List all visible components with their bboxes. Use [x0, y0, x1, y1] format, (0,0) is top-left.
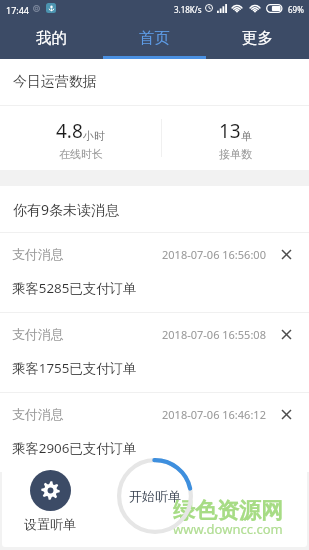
staticText: 2018-07-06 16:46:12 [162, 407, 266, 422]
staticText: 接单数 [219, 147, 252, 161]
staticText: 设置听单 [24, 516, 76, 532]
staticText: 4.8 [56, 118, 83, 144]
staticText: 更多 [242, 28, 273, 48]
staticText: 首页 [139, 28, 170, 48]
staticText: 17:44 [6, 4, 30, 16]
button[interactable]: 设置听单 [24, 470, 76, 532]
staticText: 小时 [83, 129, 105, 143]
staticText: 乘客1755已支付订单 [12, 359, 137, 377]
button[interactable]: 开始听单 [117, 458, 193, 534]
button[interactable]: 首页 [103, 18, 206, 59]
staticText: 13 [219, 118, 241, 144]
button[interactable]: Dismiss message [278, 326, 294, 342]
staticText: 今日运营数据 [13, 73, 97, 91]
staticText: 支付消息 [12, 326, 64, 342]
staticText: 单 [241, 129, 252, 143]
staticText: 你有9条未读消息 [13, 200, 120, 219]
staticText: 我的 [36, 28, 67, 48]
staticText: 2018-07-06 16:56:00 [162, 247, 266, 262]
staticText: 2018-07-06 16:55:08 [162, 327, 266, 342]
staticText: 3.18K/s [174, 4, 202, 15]
staticText: 乘客5285已支付订单 [12, 279, 137, 297]
button[interactable]: 更多 [206, 18, 309, 59]
staticText: 支付消息 [12, 406, 64, 422]
button[interactable]: 我的 [0, 18, 103, 59]
button[interactable]: Dismiss message [278, 246, 294, 262]
button[interactable]: 支付消息 [0, 393, 309, 472]
staticText: 69% [288, 4, 304, 15]
staticText: 支付消息 [12, 246, 64, 262]
staticText: 在线时长 [59, 147, 103, 161]
button[interactable]: Dismiss message [278, 406, 294, 422]
button[interactable]: 支付消息 [0, 233, 309, 312]
staticText: 乘客2906已支付订单 [12, 439, 137, 457]
staticText: www.downcc.com [173, 520, 283, 538]
staticText: 绿色资源网 [173, 497, 283, 525]
staticText: 开始听单 [129, 488, 181, 504]
button[interactable]: 支付消息 [0, 313, 309, 392]
